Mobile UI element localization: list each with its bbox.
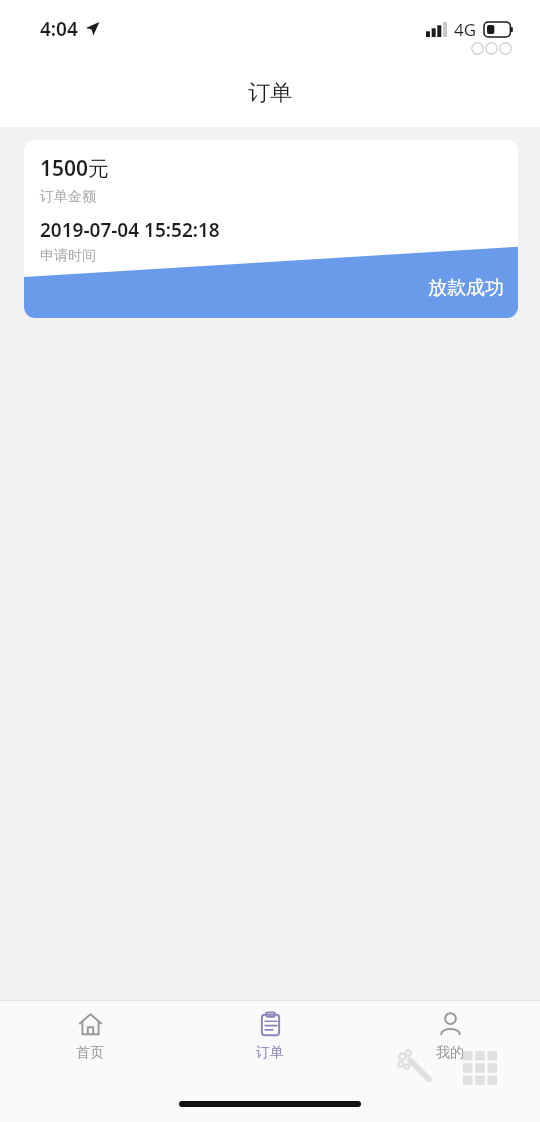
staticText: 放款成功 [428, 276, 504, 300]
staticText: 我的 [436, 1044, 464, 1062]
staticText: 2019-07-04 15:52:18 [40, 217, 220, 243]
staticText: 首页 [76, 1044, 104, 1062]
staticText: 订单 [256, 1044, 284, 1062]
other: Magic wand [397, 1049, 435, 1087]
button[interactable]: 首页 [0, 1001, 180, 1062]
staticText: 申请时间 [40, 247, 96, 265]
button[interactable]: 1500元 [24, 140, 518, 318]
button[interactable]: 我的 [360, 1001, 540, 1062]
staticText: 订单金额 [40, 188, 96, 206]
staticText: 1500元 [40, 154, 110, 183]
staticText: 4:04 [40, 16, 78, 42]
staticText: 4G [454, 18, 477, 41]
button[interactable]: 订单 [180, 1001, 360, 1062]
other: Apps grid [463, 1051, 497, 1085]
staticText: 订单 [248, 79, 292, 107]
